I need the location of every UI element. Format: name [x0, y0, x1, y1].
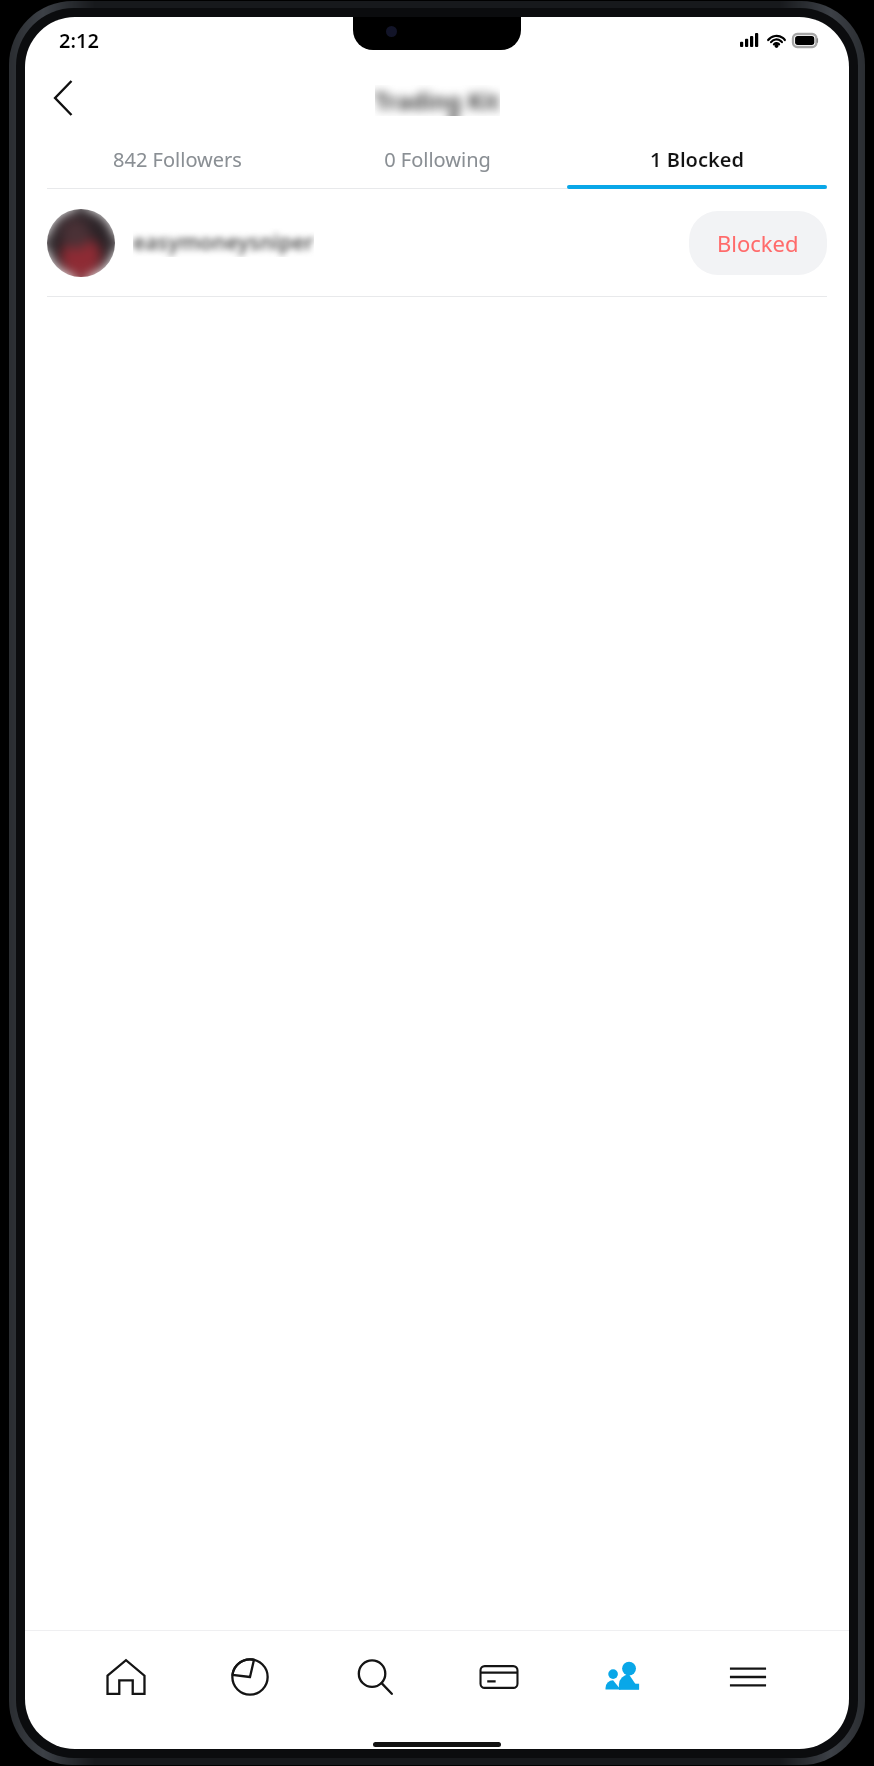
- button[interactable]: 1 Blocked: [567, 133, 827, 185]
- button[interactable]: 0 Following: [307, 133, 567, 185]
- button[interactable]: 842 Followers: [47, 133, 307, 185]
- staticText: Trading Kit: [375, 85, 500, 116]
- staticText: Blocked: [717, 228, 799, 258]
- button[interactable]: Portfolio: [212, 1638, 288, 1716]
- staticText: 1 Blocked: [650, 146, 744, 173]
- button[interactable]: Search: [337, 1638, 413, 1716]
- button[interactable]: Blocked: [689, 211, 827, 275]
- button[interactable]: Cards: [461, 1638, 537, 1716]
- staticText: 2:12: [59, 27, 99, 54]
- staticText: 842 Followers: [113, 146, 242, 173]
- button[interactable]: People: [586, 1638, 662, 1716]
- button[interactable]: Back: [35, 70, 91, 126]
- button[interactable]: easymoneysniper: [25, 189, 849, 296]
- staticText: 0 Following: [384, 146, 491, 173]
- button[interactable]: Menu: [710, 1638, 786, 1716]
- staticText: easymoneysniper: [133, 228, 314, 257]
- button[interactable]: Home: [88, 1638, 164, 1716]
